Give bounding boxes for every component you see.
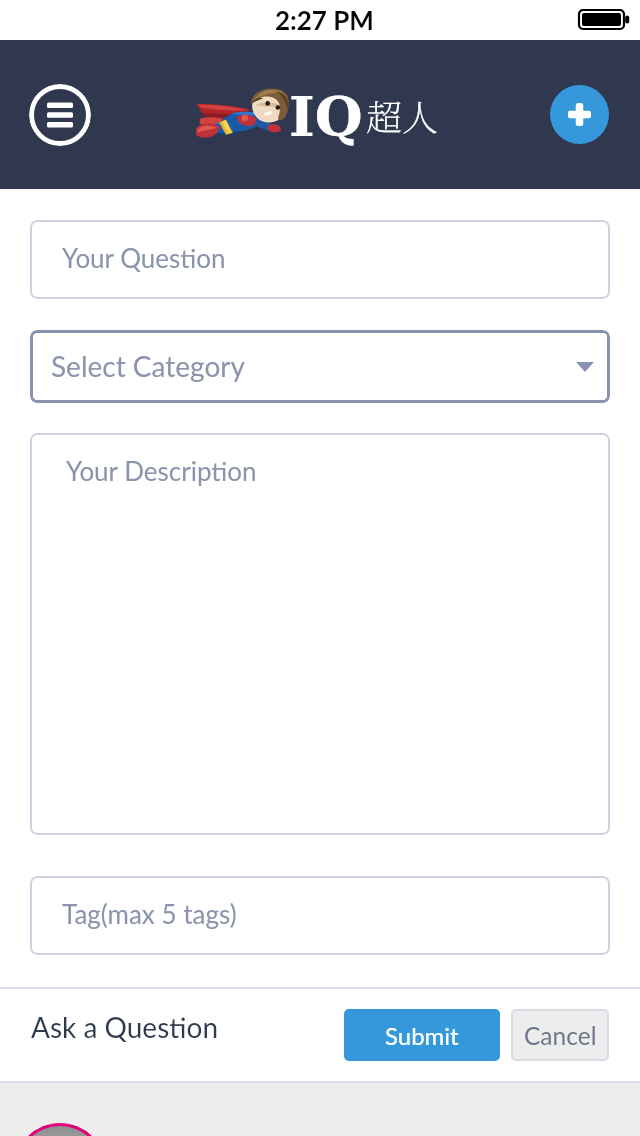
- button[interactable]: Cancel: [511, 1009, 609, 1061]
- staticText: IQ: [289, 84, 363, 149]
- button[interactable]: Your Question: [30, 220, 610, 299]
- staticText: 2:27 PM: [275, 4, 374, 35]
- button[interactable]: Select Category: [30, 330, 610, 403]
- button[interactable]: Tag(max 5 tags): [30, 876, 610, 955]
- staticText: Ask a Question: [31, 1010, 219, 1044]
- staticText: 超人: [366, 90, 439, 142]
- button[interactable]: Menu: [29, 84, 91, 146]
- staticText: Select Category: [51, 349, 245, 383]
- staticText: Your Description: [66, 455, 257, 486]
- staticText: Tag(max 5 tags): [62, 898, 237, 929]
- staticText: Cancel: [524, 1021, 597, 1050]
- button[interactable]: Add question: [550, 85, 609, 144]
- staticText: Your Question: [62, 242, 226, 273]
- button[interactable]: Your Description: [30, 433, 610, 835]
- button[interactable]: Profile: [14, 1123, 106, 1136]
- button[interactable]: Submit: [344, 1009, 500, 1061]
- staticText: Submit: [385, 1021, 459, 1050]
